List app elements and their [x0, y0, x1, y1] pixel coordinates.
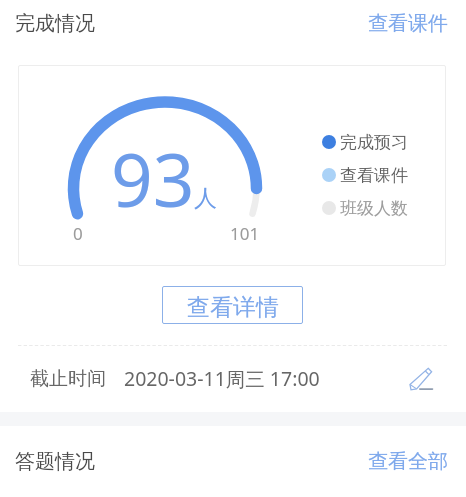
staticText: 93 — [111, 129, 195, 228]
staticText: 完成情况 — [15, 11, 95, 36]
button[interactable]: 查看详情 — [162, 286, 303, 324]
staticText: 查看详情 — [187, 293, 279, 322]
button[interactable]: 截止时间 — [0, 355, 466, 402]
button[interactable]: 编辑截止时间 — [401, 360, 437, 396]
staticText: 班级人数 — [340, 198, 408, 219]
button[interactable]: 完成情况 — [0, 0, 200, 46]
staticText: 答题情况 — [15, 449, 95, 474]
button[interactable]: 完成预习 — [322, 131, 408, 153]
button[interactable]: 班级人数 — [322, 197, 408, 219]
staticText: 101 — [230, 222, 260, 245]
staticText: 2020-03-11周三 17:00 — [124, 365, 320, 392]
button[interactable]: 查看课件 — [322, 164, 408, 186]
staticText: 截止时间 — [30, 367, 106, 391]
staticText: 0 — [73, 222, 83, 245]
staticText: 人 — [194, 184, 217, 213]
button[interactable]: 查看课件 — [350, 0, 466, 46]
staticText: 完成预习 — [340, 132, 408, 153]
button[interactable]: 答题情况 — [0, 438, 200, 484]
staticText: 查看全部 — [368, 449, 448, 474]
staticText: 查看课件 — [368, 11, 448, 36]
button[interactable]: 查看全部 — [350, 438, 466, 484]
staticText: 查看课件 — [340, 165, 408, 186]
